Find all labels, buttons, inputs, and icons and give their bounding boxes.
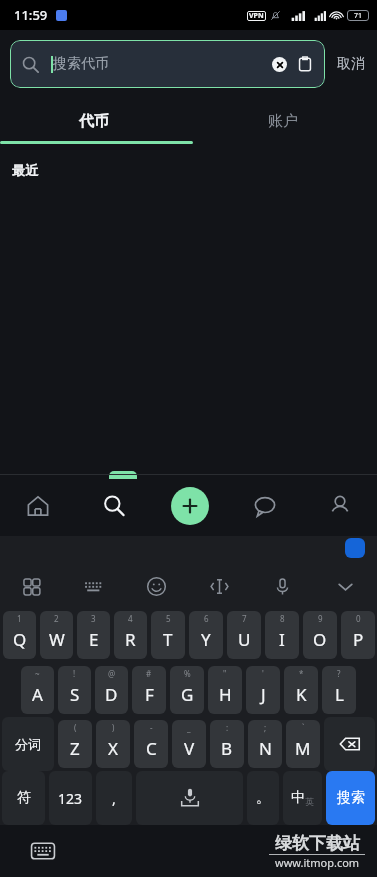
button[interactable]: 搜索	[326, 771, 375, 825]
button[interactable]: 取消	[335, 55, 367, 73]
button[interactable]: %	[170, 666, 204, 714]
staticText: U	[238, 628, 251, 651]
button[interactable]: 符	[2, 771, 45, 825]
staticText: G	[181, 683, 194, 706]
button[interactable]: Backspace	[324, 717, 375, 771]
staticText: www.itmop.com	[275, 855, 360, 870]
staticText: V	[184, 737, 195, 760]
staticText: 7	[242, 613, 247, 624]
button[interactable]: ~	[21, 666, 54, 714]
staticText: 2	[54, 613, 59, 624]
button[interactable]: Search	[76, 475, 152, 536]
button[interactable]: Apps	[0, 564, 62, 608]
button[interactable]: 0	[341, 611, 375, 659]
staticText: :	[226, 722, 229, 733]
button[interactable]: (	[58, 720, 92, 768]
button[interactable]: "	[208, 666, 242, 714]
button[interactable]: 分词	[2, 717, 54, 771]
button[interactable]: 5	[151, 611, 185, 659]
button[interactable]: Assistant	[345, 538, 365, 558]
staticText: Z	[70, 737, 80, 760]
button[interactable]: 9	[303, 611, 337, 659]
staticText: ;	[264, 722, 267, 733]
button[interactable]: Voice	[251, 564, 314, 608]
button[interactable]: ;	[248, 720, 282, 768]
button[interactable]: _	[172, 720, 206, 768]
staticText: 最近	[12, 162, 38, 178]
staticText: 代币	[79, 112, 109, 131]
button[interactable]: '	[246, 666, 280, 714]
button[interactable]: #	[132, 666, 166, 714]
staticText: *	[299, 668, 304, 679]
button[interactable]: -	[134, 720, 168, 768]
button[interactable]: Keyboard layout	[62, 564, 125, 608]
button[interactable]: !	[58, 666, 91, 714]
staticText: 英	[305, 796, 314, 807]
button[interactable]: Space	[136, 771, 243, 825]
button[interactable]: *	[284, 666, 318, 714]
staticText: 搜索代币	[53, 55, 109, 73]
staticText: 11:59	[14, 6, 48, 24]
button[interactable]: :	[210, 720, 244, 768]
staticText: R	[125, 628, 136, 651]
button[interactable]: 4	[114, 611, 147, 659]
button[interactable]: 代币	[0, 98, 188, 144]
staticText: 取消	[337, 55, 365, 73]
staticText: ~	[35, 668, 40, 679]
staticText: ,	[112, 789, 116, 808]
button[interactable]: Add	[171, 487, 209, 525]
button[interactable]: Profile	[302, 475, 377, 536]
staticText: Q	[13, 628, 27, 651]
button[interactable]: 6	[189, 611, 223, 659]
staticText: 5	[166, 613, 171, 624]
staticText: 3	[91, 613, 96, 624]
staticText: W	[49, 628, 65, 651]
button[interactable]: 搜索代币	[10, 40, 325, 88]
staticText: "	[223, 668, 227, 679]
staticText: 符	[17, 789, 31, 807]
button[interactable]: Chat	[227, 475, 302, 536]
button[interactable]: 1	[3, 611, 36, 659]
staticText: 绿软下载站	[275, 833, 360, 854]
staticText: ?	[337, 668, 341, 679]
button[interactable]: Paste	[297, 56, 313, 72]
staticText: `	[302, 722, 305, 733]
staticText: S	[70, 683, 80, 706]
staticText: N	[259, 737, 272, 760]
staticText: )	[112, 722, 115, 733]
staticText: _	[187, 722, 191, 733]
staticText: E	[89, 628, 99, 651]
button[interactable]: Clear	[272, 57, 287, 72]
button[interactable]: 3	[77, 611, 110, 659]
staticText: 6	[204, 613, 209, 624]
button[interactable]: ,	[96, 771, 132, 825]
button[interactable]: `	[286, 720, 320, 768]
button[interactable]: Cursor	[188, 564, 251, 608]
staticText: 71	[354, 11, 363, 21]
button[interactable]: Emoji	[125, 564, 188, 608]
staticText: 8	[280, 613, 285, 624]
button[interactable]: Hide keyboard	[314, 564, 377, 608]
button[interactable]: 123	[49, 771, 92, 825]
button[interactable]: Home	[0, 475, 76, 536]
button[interactable]: 8	[265, 611, 299, 659]
staticText: 123	[58, 789, 83, 808]
button[interactable]: ?	[322, 666, 356, 714]
button[interactable]: 。	[247, 771, 279, 825]
button[interactable]: Switch keyboard	[30, 838, 56, 864]
staticText: 账户	[268, 112, 298, 131]
button[interactable]: @	[95, 666, 128, 714]
button[interactable]: 7	[227, 611, 261, 659]
button[interactable]: 中	[283, 771, 322, 825]
staticText: -	[150, 722, 153, 733]
button[interactable]: 账户	[188, 98, 377, 144]
staticText: T	[163, 628, 173, 651]
staticText: 。	[256, 789, 270, 807]
button[interactable]: )	[96, 720, 130, 768]
staticText: 分词	[15, 736, 41, 752]
staticText: 0	[356, 613, 361, 624]
button[interactable]: 2	[40, 611, 73, 659]
staticText: Y	[201, 628, 211, 651]
staticText: J	[261, 683, 266, 706]
staticText: X	[108, 737, 118, 760]
